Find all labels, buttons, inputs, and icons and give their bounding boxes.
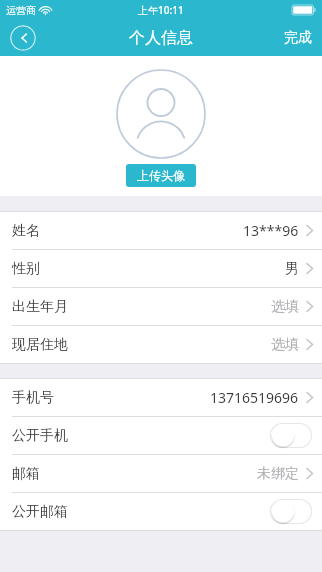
staticText: 公开手机: [12, 427, 68, 445]
staticText: 上午10:11: [138, 3, 184, 17]
button[interactable]: 完成: [274, 23, 322, 53]
staticText: 性别: [12, 260, 40, 278]
staticText: 运营商: [6, 4, 36, 17]
button[interactable]: 邮箱: [0, 455, 322, 492]
staticText: 出生年月: [12, 298, 68, 316]
button[interactable]: 公开邮箱: [270, 499, 312, 524]
staticText: 上传头像: [137, 168, 185, 183]
button[interactable]: 出生年月: [0, 288, 322, 325]
staticText: 手机号: [12, 389, 54, 407]
staticText: 邮箱: [12, 465, 40, 483]
staticText: 现居住地: [12, 336, 68, 354]
staticText: 选填: [271, 336, 299, 354]
button[interactable]: 现居住地: [0, 326, 322, 363]
staticText: 完成: [284, 29, 312, 47]
button[interactable]: 公开手机: [270, 423, 312, 448]
button[interactable]: 手机号: [0, 379, 322, 416]
staticText: 13***96: [243, 221, 299, 240]
button[interactable]: 性别: [0, 250, 322, 287]
staticText: 姓名: [12, 222, 40, 240]
button[interactable]: 公开邮箱: [0, 493, 322, 530]
button[interactable]: 公开手机: [0, 417, 322, 454]
staticText: 13716519696: [210, 388, 299, 407]
button[interactable]: 返回: [10, 25, 36, 51]
staticText: 公开邮箱: [12, 503, 68, 521]
staticText: 个人信息: [129, 28, 193, 48]
staticText: 选填: [271, 298, 299, 316]
staticText: 未绑定: [257, 465, 299, 483]
staticText: 男: [285, 260, 299, 278]
button[interactable]: 姓名: [0, 212, 322, 249]
button[interactable]: 上传头像: [126, 164, 196, 187]
